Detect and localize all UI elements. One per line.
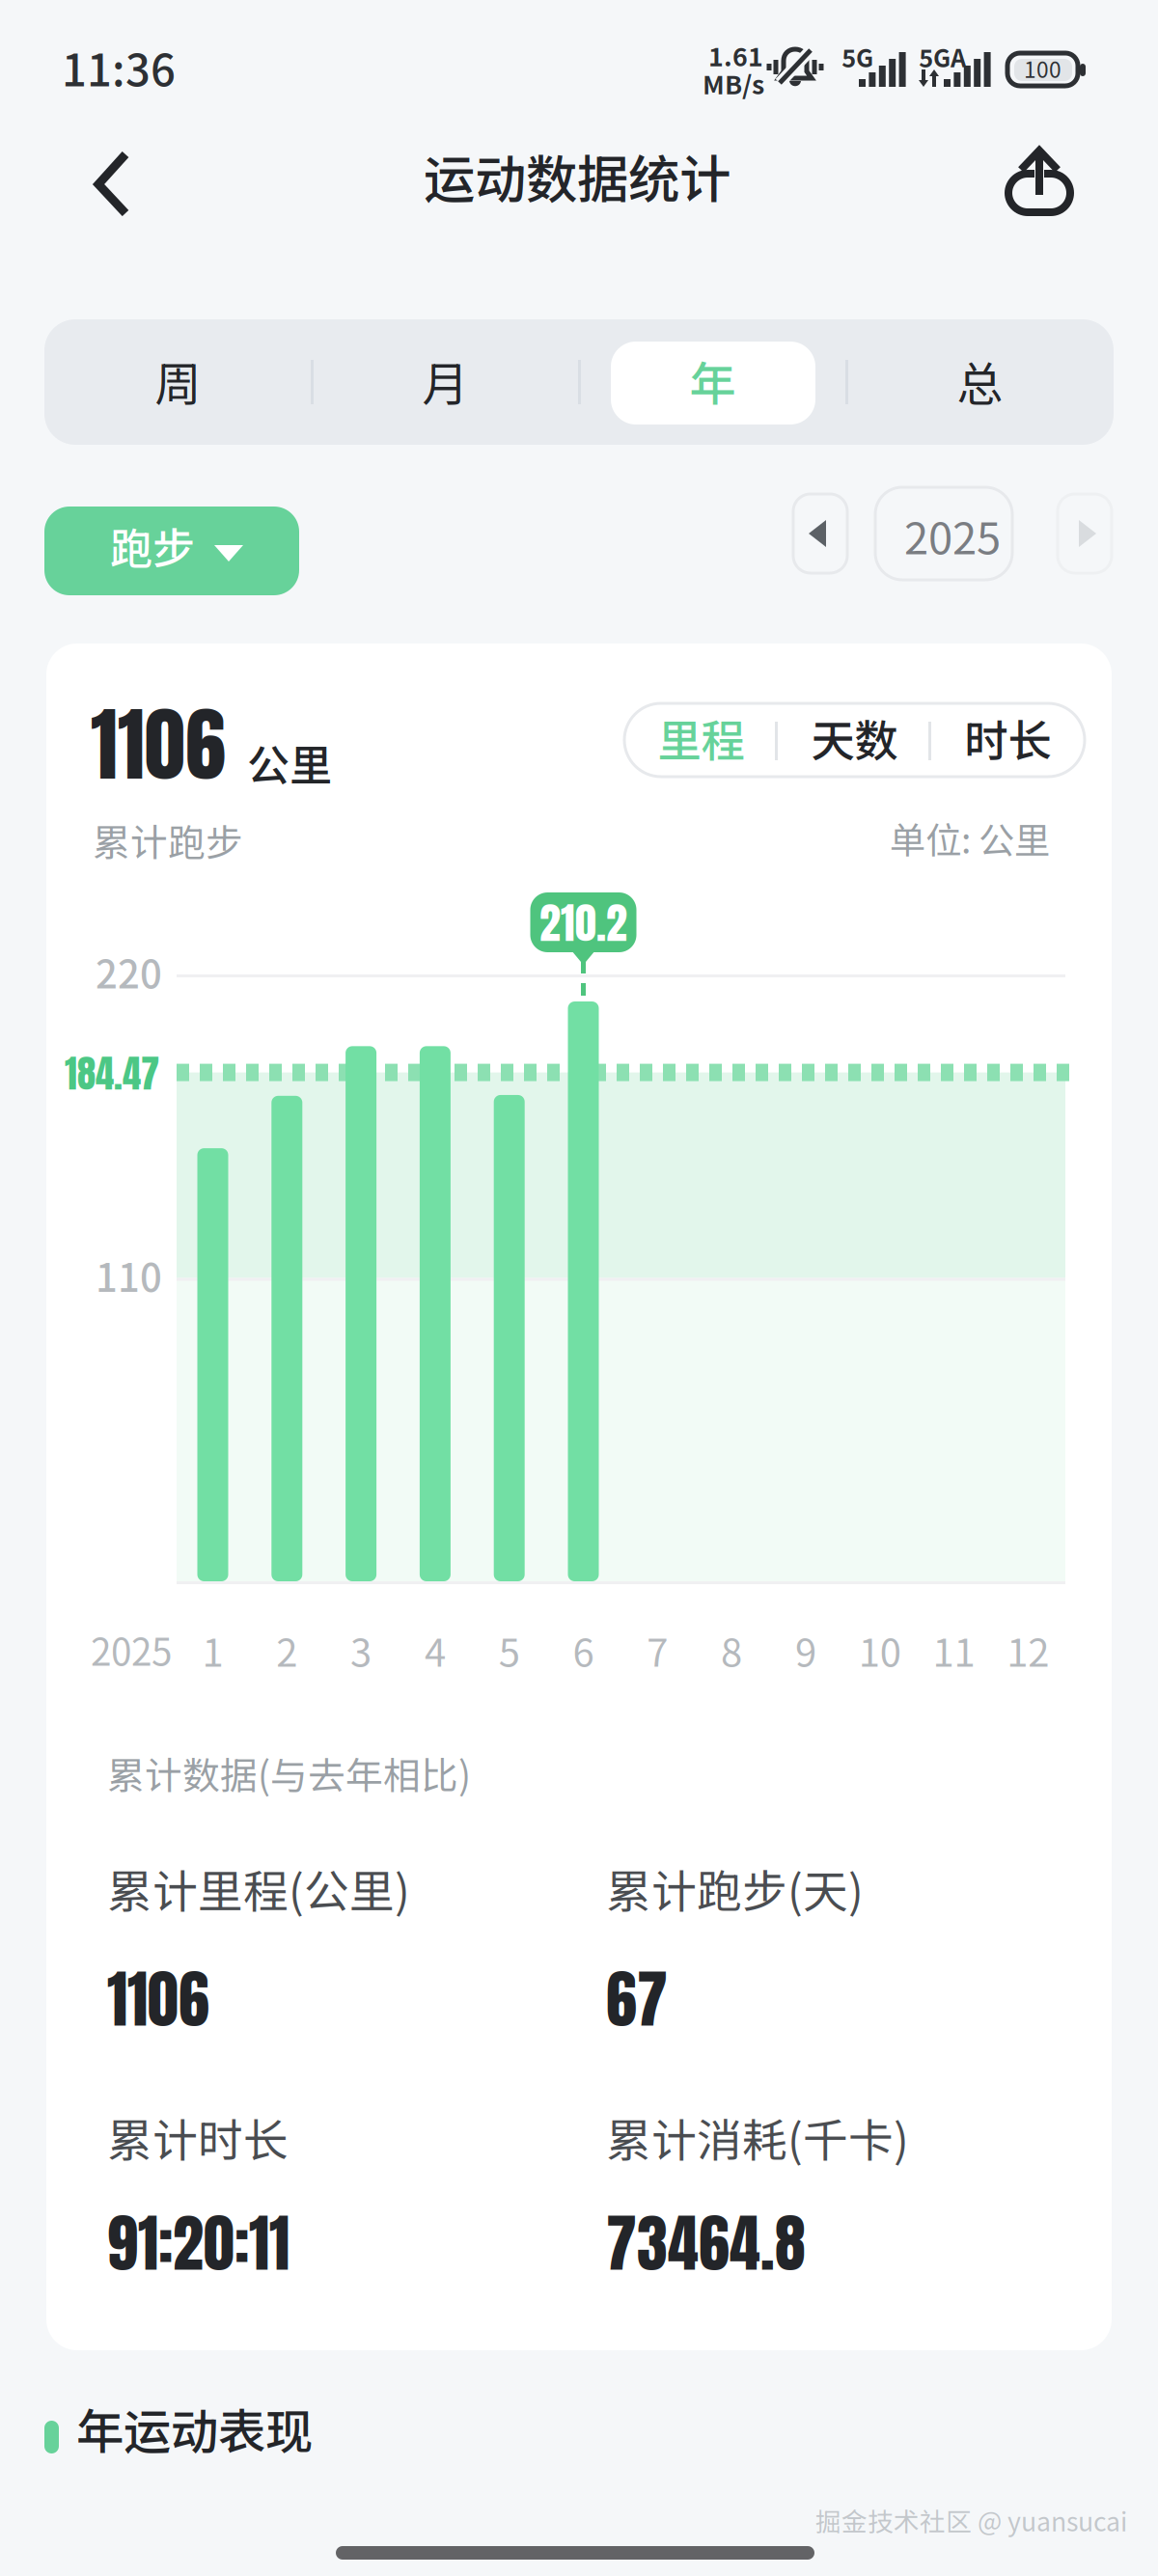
button[interactable]: Next year bbox=[1058, 494, 1112, 573]
staticText: 8 bbox=[721, 1622, 742, 1678]
staticText: 周 bbox=[155, 347, 201, 414]
staticText: 运动数据统计 bbox=[424, 139, 731, 213]
staticText: 184.47 bbox=[65, 1046, 159, 1102]
staticText: 9 bbox=[795, 1622, 816, 1678]
staticText: 11 bbox=[933, 1622, 975, 1678]
staticText: 累计跑步(天) bbox=[606, 1856, 864, 1921]
staticText: 累计时长 bbox=[107, 2105, 289, 2170]
button[interactable]: 天数 bbox=[778, 703, 931, 777]
staticText: 年 bbox=[689, 347, 736, 414]
staticText: 73464.8 bbox=[606, 2197, 806, 2290]
button[interactable]: 时长 bbox=[931, 703, 1085, 777]
staticText: 210.2 bbox=[539, 891, 627, 955]
staticText: 单位: 公里 bbox=[890, 812, 1050, 864]
staticText: 5GA bbox=[919, 39, 966, 74]
staticText: 累计消耗(千卡) bbox=[606, 2105, 909, 2170]
staticText: 220 bbox=[96, 944, 162, 1000]
staticText: 累计里程(公里) bbox=[107, 1856, 410, 1921]
staticText: 跑步 bbox=[110, 515, 195, 576]
button[interactable]: 年 bbox=[579, 319, 846, 445]
staticText: 110 bbox=[96, 1247, 162, 1303]
button[interactable]: Back bbox=[50, 133, 156, 239]
staticText: 12 bbox=[1007, 1622, 1049, 1678]
staticText: 累计数据(与去年相比) bbox=[107, 1746, 471, 1800]
staticText: 3 bbox=[350, 1622, 372, 1678]
staticText: 11:36 bbox=[62, 36, 176, 99]
staticText: 5G bbox=[841, 39, 873, 74]
button[interactable]: Share bbox=[996, 133, 1102, 239]
button[interactable]: 2025 bbox=[884, 487, 1021, 580]
button[interactable]: 月 bbox=[312, 319, 579, 445]
staticText: 7 bbox=[647, 1622, 668, 1678]
staticText: 1106 bbox=[91, 683, 226, 805]
staticText: 5 bbox=[499, 1622, 520, 1678]
staticText: 1.61 bbox=[708, 36, 763, 74]
staticText: 时长 bbox=[965, 706, 1051, 770]
staticText: 100 bbox=[1024, 53, 1061, 84]
staticText: 里程 bbox=[658, 706, 744, 770]
staticText: 2025 bbox=[904, 504, 1001, 567]
button[interactable]: Previous year bbox=[793, 494, 847, 573]
staticText: 年运动表现 bbox=[76, 2394, 313, 2463]
staticText: 2 bbox=[276, 1622, 298, 1678]
button[interactable]: 里程 bbox=[624, 703, 778, 777]
staticText: 公里 bbox=[247, 732, 332, 793]
staticText: 掘金技术社区 @ yuansucai bbox=[815, 2502, 1127, 2539]
staticText: 10 bbox=[859, 1622, 901, 1678]
staticText: 4 bbox=[425, 1622, 446, 1678]
button[interactable]: 总 bbox=[846, 319, 1114, 445]
staticText: 6 bbox=[573, 1622, 594, 1678]
button[interactable]: 周 bbox=[44, 319, 312, 445]
staticText: MB/s bbox=[703, 64, 764, 102]
staticText: 天数 bbox=[811, 706, 898, 770]
staticText: 累计跑步 bbox=[93, 813, 243, 867]
staticText: 91:20:11 bbox=[107, 2197, 289, 2290]
staticText: 2025 bbox=[91, 1623, 172, 1677]
staticText: 1106 bbox=[107, 1953, 209, 2046]
staticText: 月 bbox=[422, 347, 469, 414]
staticText: 1 bbox=[202, 1622, 223, 1678]
staticText: 67 bbox=[606, 1953, 668, 2046]
staticText: 总 bbox=[957, 347, 1003, 414]
button[interactable]: 跑步 bbox=[44, 507, 299, 595]
